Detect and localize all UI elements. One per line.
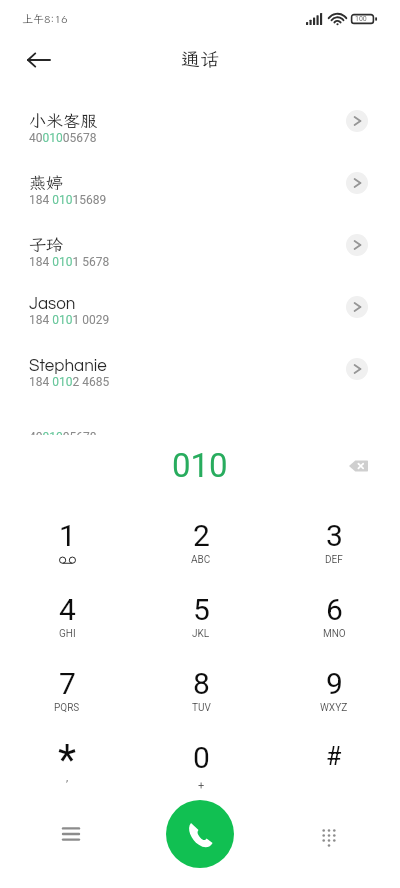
staticText: 2 <box>193 518 210 553</box>
staticText: 6 <box>326 592 343 627</box>
button[interactable]: 6 <box>267 587 400 649</box>
button[interactable]: 9 <box>267 661 400 723</box>
staticText: 4001005678 <box>29 430 97 444</box>
staticText: TUV <box>192 702 211 714</box>
button[interactable]: Stephanie <box>0 342 400 404</box>
staticText: 4001005678 <box>29 131 97 145</box>
button[interactable]: Call <box>166 800 234 868</box>
staticText: WXYZ <box>320 702 348 714</box>
button[interactable]: Back <box>16 37 62 83</box>
staticText: 100 <box>355 15 367 23</box>
button[interactable]: Backspace <box>340 448 376 484</box>
staticText: ABC <box>191 554 211 566</box>
button[interactable]: Call log <box>47 810 95 858</box>
button[interactable]: 4 <box>0 587 134 649</box>
staticText: 1 <box>59 518 76 553</box>
button[interactable]: 8 <box>134 661 268 723</box>
button[interactable]: Jason <box>0 280 400 342</box>
staticText: 通话 <box>181 46 220 71</box>
staticText: Stephanie <box>29 357 107 375</box>
staticText: 184 0101 0029 <box>29 313 110 327</box>
button[interactable]: 1 <box>0 513 134 575</box>
button[interactable]: Dialpad <box>305 810 353 858</box>
staticText: Jason <box>29 295 76 313</box>
button[interactable]: 小米客服 <box>0 94 400 156</box>
staticText: # <box>326 742 342 771</box>
staticText: 小米客服 <box>29 109 97 131</box>
button[interactable]: 4001005678 <box>0 404 400 466</box>
staticText: 燕婷 <box>29 171 63 193</box>
staticText: PQRS <box>54 702 80 714</box>
button[interactable]: 子玲 <box>0 218 400 280</box>
staticText: DEF <box>325 554 343 566</box>
staticText: 上午8:16 <box>22 12 68 26</box>
staticText: 子玲 <box>29 233 63 255</box>
button[interactable]: 7 <box>0 661 134 723</box>
staticText: 7 <box>59 666 76 701</box>
staticText: 3 <box>326 518 343 553</box>
staticText: 184 0102 4685 <box>29 375 110 389</box>
staticText: + <box>198 779 205 792</box>
staticText: 4 <box>59 592 76 627</box>
staticText: 9 <box>326 666 343 701</box>
button[interactable]: 5 <box>134 587 268 649</box>
staticText: MNO <box>323 628 346 640</box>
staticText: 8 <box>193 666 210 701</box>
staticText: 0 <box>193 740 210 775</box>
staticText: 010 <box>172 446 228 485</box>
button[interactable]: 2 <box>134 513 268 575</box>
staticText: 5 <box>193 592 210 627</box>
staticText: , <box>66 771 69 784</box>
staticText: JKL <box>192 628 210 640</box>
staticText: 184 01015689 <box>29 193 107 207</box>
button[interactable]: 3 <box>267 513 400 575</box>
button[interactable]: 燕婷 <box>0 156 400 218</box>
staticText: * <box>58 735 77 784</box>
button[interactable]: * <box>0 735 134 797</box>
button[interactable]: 0 <box>134 735 268 797</box>
staticText: GHI <box>59 628 76 640</box>
staticText: 184 0101 5678 <box>29 255 110 269</box>
button[interactable]: # <box>267 735 400 797</box>
